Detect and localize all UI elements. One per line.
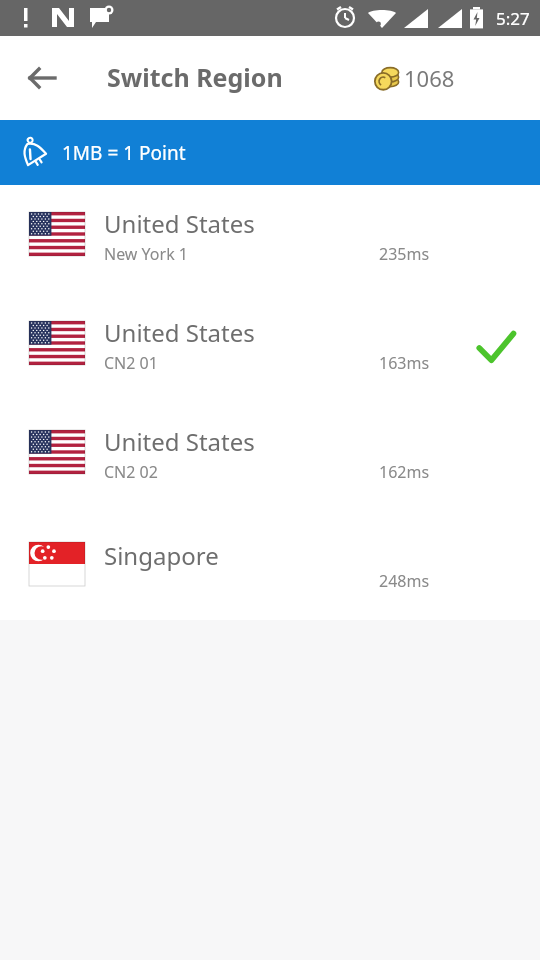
staticText: 1068 — [404, 63, 455, 93]
staticText: New York 1 — [104, 243, 189, 265]
staticText: Singapore — [104, 539, 219, 572]
staticText: 162ms — [379, 461, 430, 483]
button[interactable]: 1MB = 1 Point — [0, 120, 540, 185]
staticText: 163ms — [379, 352, 430, 374]
staticText: 5:27 — [496, 7, 530, 30]
button[interactable]: United States — [0, 403, 540, 512]
button[interactable]: Singapore — [0, 512, 540, 620]
staticText: United States — [104, 425, 255, 458]
staticText: 248ms — [379, 570, 430, 592]
staticText: CN2 02 — [104, 461, 158, 483]
staticText: CN2 01 — [104, 352, 158, 374]
button[interactable]: United States — [0, 185, 540, 294]
button[interactable]: United States — [0, 294, 540, 403]
staticText: 235ms — [379, 243, 430, 265]
other: Selected — [477, 329, 515, 367]
button[interactable]: 1068 — [374, 63, 455, 93]
staticText: United States — [104, 207, 255, 240]
staticText: 1MB = 1 Point — [62, 140, 186, 166]
staticText: United States — [104, 316, 255, 349]
button[interactable]: Back — [14, 50, 70, 106]
staticText: Switch Region — [107, 60, 283, 94]
